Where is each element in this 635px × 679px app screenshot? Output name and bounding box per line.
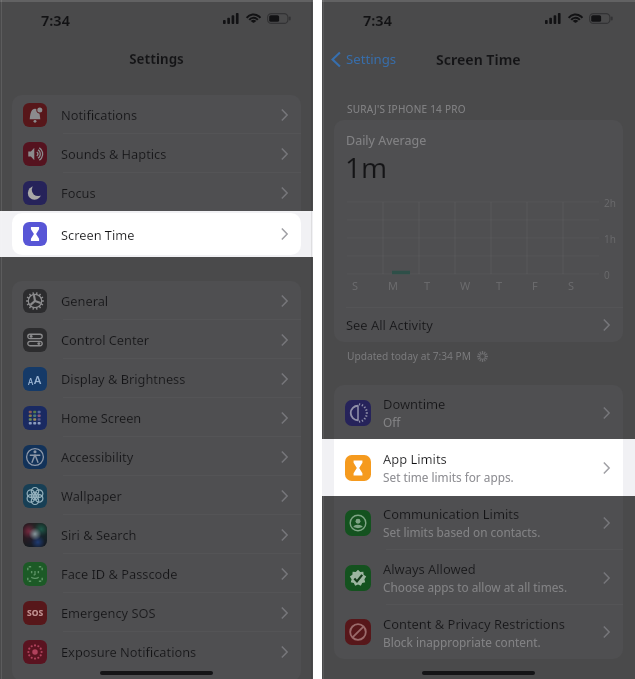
button[interactable]: Content & Privacy Restrictions (334, 605, 623, 659)
staticText: Sounds & Haptics (61, 145, 167, 162)
staticText: T (496, 278, 503, 293)
button[interactable]: Notifications (12, 95, 301, 134)
staticText: Choose apps to allow at all times. (383, 579, 568, 595)
button[interactable]: Home Screen (12, 398, 301, 437)
button[interactable]: Screen Time (12, 212, 301, 251)
staticText: Screen Time (61, 223, 135, 240)
button[interactable]: Accessibility (12, 437, 301, 476)
staticText: M (388, 278, 398, 293)
button[interactable]: App Limits (334, 440, 623, 495)
staticText: App Limits (383, 450, 447, 468)
staticText: 2h (604, 196, 616, 210)
staticText: App Limits (383, 450, 447, 468)
staticText: S (568, 278, 575, 293)
button[interactable]: See All Activity (334, 308, 623, 342)
button[interactable]: A (12, 359, 301, 398)
staticText: Face ID & Passcode (61, 565, 178, 582)
button[interactable]: General (12, 281, 301, 320)
staticText: Block inappropriate content. (383, 634, 541, 650)
other: Back to Settings (332, 52, 341, 67)
staticText: SURAJ'S IPHONE 14 PRO (347, 102, 466, 116)
button[interactable]: SOS (12, 593, 301, 632)
button[interactable]: Sounds & Haptics (12, 134, 301, 173)
staticText: Siri & Search (61, 526, 137, 543)
staticText: Set time limits for apps. (383, 469, 514, 485)
staticText: Emergency SOS (61, 604, 156, 621)
staticText: T (424, 278, 431, 293)
staticText: 0 (604, 268, 610, 282)
staticText: W (460, 278, 471, 293)
button[interactable]: App Limits (334, 439, 623, 496)
staticText: Display & Brightness (61, 370, 186, 387)
staticText: Downtime (383, 395, 446, 413)
staticText: SOS (27, 607, 44, 619)
staticText: Settings (0, 50, 313, 68)
staticText: Daily Average (346, 132, 427, 149)
staticText: 1m (345, 148, 388, 186)
staticText: Home Screen (61, 409, 142, 426)
staticText: Set time limits for apps. (383, 469, 514, 485)
staticText: Exposure Notifications (61, 643, 197, 660)
staticText: Screen Time (436, 50, 521, 69)
staticText: Set limits based on contacts. (383, 524, 541, 540)
button[interactable]: Wallpaper (12, 476, 301, 515)
staticText: General (61, 292, 109, 309)
staticText: Screen Time (61, 226, 135, 243)
button[interactable]: Back to Settings (322, 44, 405, 74)
staticText: Settings (346, 50, 397, 68)
staticText: S (352, 278, 359, 293)
button[interactable]: Exposure Notifications (12, 632, 301, 671)
button[interactable]: Focus (12, 173, 301, 212)
staticText: A (34, 372, 42, 387)
staticText: See All Activity (346, 316, 433, 334)
button[interactable]: Communication Limits (334, 495, 623, 550)
staticText: Always Allowed (383, 560, 476, 578)
staticText: Wallpaper (61, 487, 122, 504)
button[interactable]: Downtime (334, 385, 623, 440)
staticText: F (532, 278, 538, 293)
button[interactable]: Control Center (12, 320, 301, 359)
staticText: Notifications (61, 106, 138, 123)
staticText: Accessibility (61, 448, 134, 465)
staticText: 7:34 (41, 10, 70, 30)
staticText: 7:34 (363, 10, 392, 30)
staticText: Updated today at 7:34 PM (347, 349, 472, 363)
button[interactable]: Screen Time (12, 213, 301, 255)
button[interactable]: Always Allowed (334, 550, 623, 605)
staticText: Content & Privacy Restrictions (383, 615, 565, 633)
staticText: Off (383, 414, 401, 430)
staticText: 1h (604, 232, 616, 246)
staticText: Focus (61, 184, 96, 201)
staticText: A (28, 376, 34, 387)
staticText: Communication Limits (383, 505, 520, 523)
button[interactable]: Face ID & Passcode (12, 554, 301, 593)
button[interactable]: Siri & Search (12, 515, 301, 554)
staticText: Control Center (61, 331, 150, 348)
